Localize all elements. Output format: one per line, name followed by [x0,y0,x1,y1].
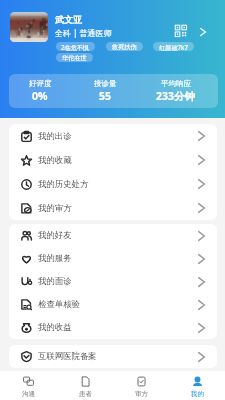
staticText: 沟通 [22,390,35,398]
staticText: 我的面诊 [38,276,72,287]
staticText: 我的审方 [38,203,72,214]
staticText: 我的 [191,390,204,398]
button[interactable]: 我的服务 [9,247,217,270]
staticText: 233分钟 [156,89,196,103]
button[interactable]: 我的面诊 [9,270,217,293]
button[interactable]: 平均响应 [136,74,216,108]
button[interactable]: 扫一扫 [174,24,188,38]
staticText: 审方 [135,390,148,398]
staticText: 红颜破7k7 [159,43,188,51]
button[interactable]: 2临危不惧 [56,42,95,51]
button[interactable]: 我的好友 [9,224,217,247]
staticText: 我的服务 [38,253,72,264]
staticText: 检查单核验 [38,299,80,310]
button[interactable]: 审方 [113,371,169,400]
staticText: 我的收藏 [38,155,72,166]
staticText: 我的历史处方 [38,179,89,190]
staticText: 0% [32,89,48,103]
staticText: 全科 | 普通医师 [55,27,112,38]
button[interactable]: 救死扶伤 [106,42,143,51]
button[interactable]: 我的审方 [9,196,217,220]
staticText: 55 [99,89,112,103]
staticText: 华佗在世 [62,54,87,62]
staticText: 好评度 [29,79,52,88]
staticText: 互联网医院备案 [38,351,97,362]
button[interactable]: 我的历史处方 [9,172,217,196]
button[interactable]: 沟通 [0,371,57,400]
staticText: 2临危不惧 [61,43,90,51]
button[interactable]: 我的 [169,371,225,400]
staticText: 平均响应 [161,79,191,88]
button[interactable]: 头像 [10,12,48,42]
button[interactable]: 好评度 [9,74,80,108]
staticText: 救死扶伤 [112,43,137,51]
button[interactable]: 华佗在世 [56,53,93,62]
button[interactable]: 检查单核验 [9,293,217,316]
button[interactable]: 互联网医院备案 [9,345,217,368]
staticText: 患者 [79,390,92,398]
staticText: 武文亚 [55,14,82,25]
button[interactable]: 红颜破7k7 [153,42,194,51]
staticText: 我的收益 [38,322,72,333]
staticText: 接诊量 [94,79,117,88]
button[interactable]: 我的收益 [9,316,217,339]
staticText: 我的出诊 [38,131,72,142]
button[interactable]: 我的收藏 [9,148,217,172]
button[interactable]: 接诊量 [65,74,145,108]
button[interactable]: 我的出诊 [9,124,217,148]
button[interactable]: 患者 [57,371,113,400]
staticText: 我的好友 [38,230,72,241]
